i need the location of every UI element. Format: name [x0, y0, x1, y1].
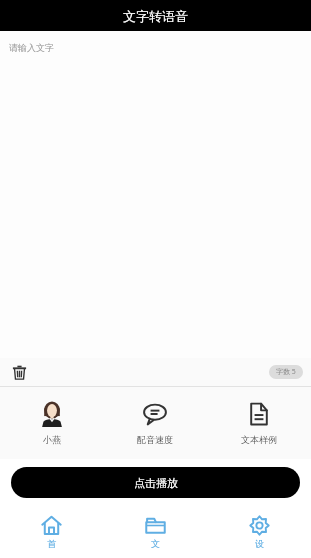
- button[interactable]: 首: [0, 511, 103, 553]
- staticText: 配音速度: [137, 434, 173, 445]
- staticText: 小燕: [43, 434, 61, 445]
- button[interactable]: 清空文字: [8, 361, 30, 383]
- staticText: 设: [255, 538, 264, 549]
- button[interactable]: 字数 5: [269, 365, 303, 379]
- button[interactable]: 设: [207, 511, 311, 553]
- staticText: 点击播放: [134, 476, 178, 490]
- button[interactable]: 配音速度: [103, 395, 207, 451]
- staticText: 文: [151, 538, 160, 549]
- staticText: 首: [47, 538, 56, 549]
- button[interactable]: 文本样例: [207, 395, 311, 451]
- button[interactable]: 小燕: [0, 395, 103, 451]
- button[interactable]: 点击播放: [11, 467, 300, 498]
- staticText: 文字转语音: [123, 8, 188, 24]
- staticText: 文本样例: [241, 434, 277, 445]
- staticText: 请输入文字: [9, 42, 54, 53]
- button[interactable]: 文: [103, 511, 207, 553]
- staticText: 字数 5: [276, 367, 296, 377]
